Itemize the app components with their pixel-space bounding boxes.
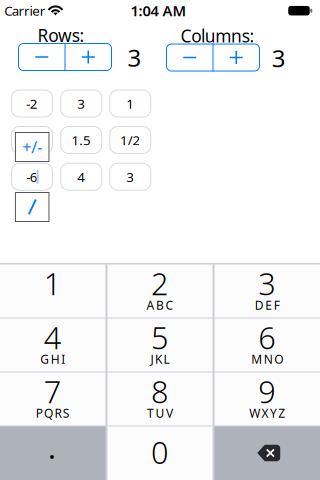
- button[interactable]: 7: [0, 372, 105, 425]
- staticText: I: [61, 351, 65, 367]
- button[interactable]: 3: [214, 264, 320, 317]
- button[interactable]: 8: [107, 372, 212, 425]
- button[interactable]: 4: [0, 318, 105, 371]
- staticText: S: [63, 405, 70, 421]
- staticText: B: [156, 297, 164, 313]
- staticText: D: [255, 297, 264, 313]
- staticText: 3: [258, 263, 276, 304]
- staticText: 3: [126, 168, 134, 186]
- button[interactable]: 6: [214, 318, 320, 371]
- staticText: P: [36, 405, 43, 421]
- staticText: 4: [77, 168, 85, 186]
- button[interactable]: Matrix cell 3: [109, 163, 151, 191]
- staticText: X: [262, 405, 269, 421]
- staticText: 8: [151, 371, 169, 412]
- button[interactable]: +/-: [15, 132, 49, 162]
- staticText: F: [274, 297, 280, 313]
- staticText: 3: [272, 42, 286, 74]
- staticText: 3: [77, 95, 85, 112]
- staticText: N: [264, 351, 273, 367]
- staticText: 9: [258, 371, 276, 412]
- button[interactable]: Decimal point: [0, 426, 105, 480]
- staticText: -6: [26, 168, 38, 186]
- button[interactable]: Decrement: [166, 43, 213, 71]
- staticText: Y: [270, 405, 277, 421]
- staticText: R: [54, 405, 61, 421]
- staticText: 1: [44, 263, 62, 304]
- staticText: K: [155, 351, 162, 367]
- button[interactable]: Matrix cell 1/2: [109, 126, 151, 154]
- staticText: -2: [26, 95, 38, 112]
- button[interactable]: 0: [107, 426, 212, 480]
- staticText: C: [165, 297, 173, 313]
- staticText: 0: [151, 432, 169, 472]
- staticText: 4: [44, 317, 62, 358]
- staticText: Columns:: [180, 24, 254, 47]
- staticText: L: [163, 351, 169, 367]
- button[interactable]: Matrix cell row 2 column 1: [11, 126, 53, 154]
- button[interactable]: Increment: [213, 43, 259, 71]
- button[interactable]: Matrix cell 4: [60, 163, 102, 191]
- button[interactable]: 1: [0, 264, 105, 317]
- button[interactable]: Matrix cell 1.5: [60, 126, 102, 154]
- button[interactable]: Decrement: [18, 43, 65, 71]
- staticText: U: [155, 405, 164, 421]
- staticText: H: [51, 351, 60, 367]
- staticText: 1/2: [120, 131, 140, 149]
- staticText: T: [147, 405, 154, 421]
- button[interactable]: 5: [107, 318, 212, 371]
- staticText: Q: [44, 405, 53, 421]
- staticText: 5: [151, 317, 169, 358]
- staticText: 6: [258, 317, 276, 358]
- button[interactable]: Divide: [15, 192, 49, 222]
- staticText: V: [166, 405, 173, 421]
- button[interactable]: 2: [107, 264, 212, 317]
- staticText: +/-: [22, 136, 42, 158]
- staticText: 1: [126, 95, 134, 112]
- button[interactable]: 9: [214, 372, 320, 425]
- staticText: 2: [151, 263, 169, 304]
- staticText: E: [265, 297, 272, 313]
- button[interactable]: Increment: [65, 43, 111, 71]
- staticText: W: [249, 405, 260, 421]
- staticText: 3: [127, 42, 141, 73]
- button[interactable]: Matrix cell 3: [60, 89, 102, 117]
- staticText: 7: [44, 371, 62, 412]
- button[interactable]: Matrix cell 1: [109, 89, 151, 117]
- staticText: 1.5: [71, 131, 91, 149]
- button[interactable]: Matrix cell -6: [11, 163, 53, 191]
- staticText: Carrier: [4, 2, 46, 19]
- staticText: Z: [278, 405, 285, 421]
- staticText: M: [251, 351, 262, 367]
- staticText: A: [147, 297, 155, 313]
- staticText: O: [274, 351, 283, 367]
- staticText: G: [40, 351, 49, 367]
- staticText: J: [151, 351, 154, 367]
- staticText: 1:04 AM: [130, 1, 186, 20]
- button[interactable]: Matrix cell -2: [11, 89, 53, 117]
- button[interactable]: Delete: [214, 426, 320, 480]
- staticText: Rows:: [38, 24, 84, 47]
